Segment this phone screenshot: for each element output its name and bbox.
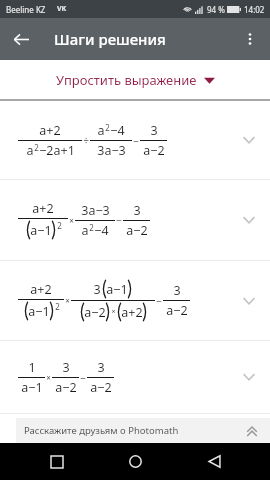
staticText: 2 (105, 122, 110, 133)
staticText: − (156, 294, 162, 308)
staticText: 2 (89, 222, 94, 233)
staticText: a−2 (55, 379, 77, 396)
staticText: a+2 (121, 304, 143, 321)
button[interactable]: Back (4, 22, 38, 56)
button[interactable]: Expand step (234, 205, 264, 235)
staticText: −4 (110, 122, 125, 139)
staticText: Упростить выражение (56, 71, 197, 89)
staticText: −4 (94, 222, 109, 239)
staticText: 1 (28, 359, 36, 376)
staticText: a−1 (28, 303, 50, 320)
staticText: Расскажите друзьям о Photomath (24, 424, 244, 437)
staticText: a−2 (126, 222, 148, 239)
button[interactable]: Home (113, 443, 157, 480)
button[interactable]: a+2 (0, 180, 270, 260)
staticText: a−1 (30, 222, 52, 239)
staticText: Beeline KZ (6, 4, 46, 15)
staticText: 3a−3 (81, 202, 110, 219)
staticText: − (133, 134, 139, 148)
staticText: a (81, 222, 89, 239)
button[interactable]: Expand step (234, 125, 264, 155)
staticText: −2a+1 (39, 142, 75, 159)
staticText: 2 (57, 220, 62, 231)
button[interactable]: a+2 (0, 261, 270, 340)
staticText: a+2 (30, 281, 52, 298)
staticText: a (26, 142, 34, 159)
staticText: 3 (133, 202, 141, 219)
staticText: 3 (150, 122, 158, 139)
staticText: 94 % (207, 4, 225, 15)
staticText: × (65, 295, 70, 306)
staticText: × (111, 307, 116, 317)
staticText: a−1 (21, 379, 43, 396)
button[interactable]: Расскажите друзьям о Photomath (16, 418, 270, 443)
staticText: 3 (93, 281, 101, 298)
staticText: a−2 (143, 142, 165, 159)
staticText: × (46, 372, 51, 383)
staticText: a (97, 122, 105, 139)
staticText: Шаги решения (54, 29, 166, 49)
staticText: × (69, 215, 74, 226)
button[interactable]: More options (233, 22, 267, 56)
staticText: VK (57, 4, 67, 14)
staticText: ÷ (83, 134, 89, 148)
button[interactable]: Recent apps (35, 443, 79, 480)
staticText: a+2 (39, 122, 61, 139)
staticText: − (80, 371, 86, 385)
staticText: a−2 (90, 379, 112, 396)
staticText: 2 (55, 301, 60, 312)
button[interactable]: 1 (0, 341, 270, 413)
staticText: 3a−3 (97, 142, 126, 159)
button[interactable]: Back (192, 443, 236, 480)
button[interactable]: Expand step (234, 362, 264, 392)
button[interactable]: Expand step (234, 286, 264, 316)
staticText: 2 (34, 142, 39, 153)
staticText: a−2 (84, 304, 106, 321)
staticText: 14:02 (244, 4, 265, 15)
staticText: a−2 (166, 302, 188, 319)
staticText: 3 (173, 282, 181, 299)
button[interactable]: Упростить выражение (0, 60, 270, 99)
staticText: a−1 (106, 281, 128, 298)
staticText: a+2 (32, 200, 54, 217)
staticText: 3 (62, 359, 70, 376)
staticText: − (116, 213, 122, 227)
staticText: 3 (97, 359, 105, 376)
button[interactable]: a+2 (0, 101, 270, 179)
